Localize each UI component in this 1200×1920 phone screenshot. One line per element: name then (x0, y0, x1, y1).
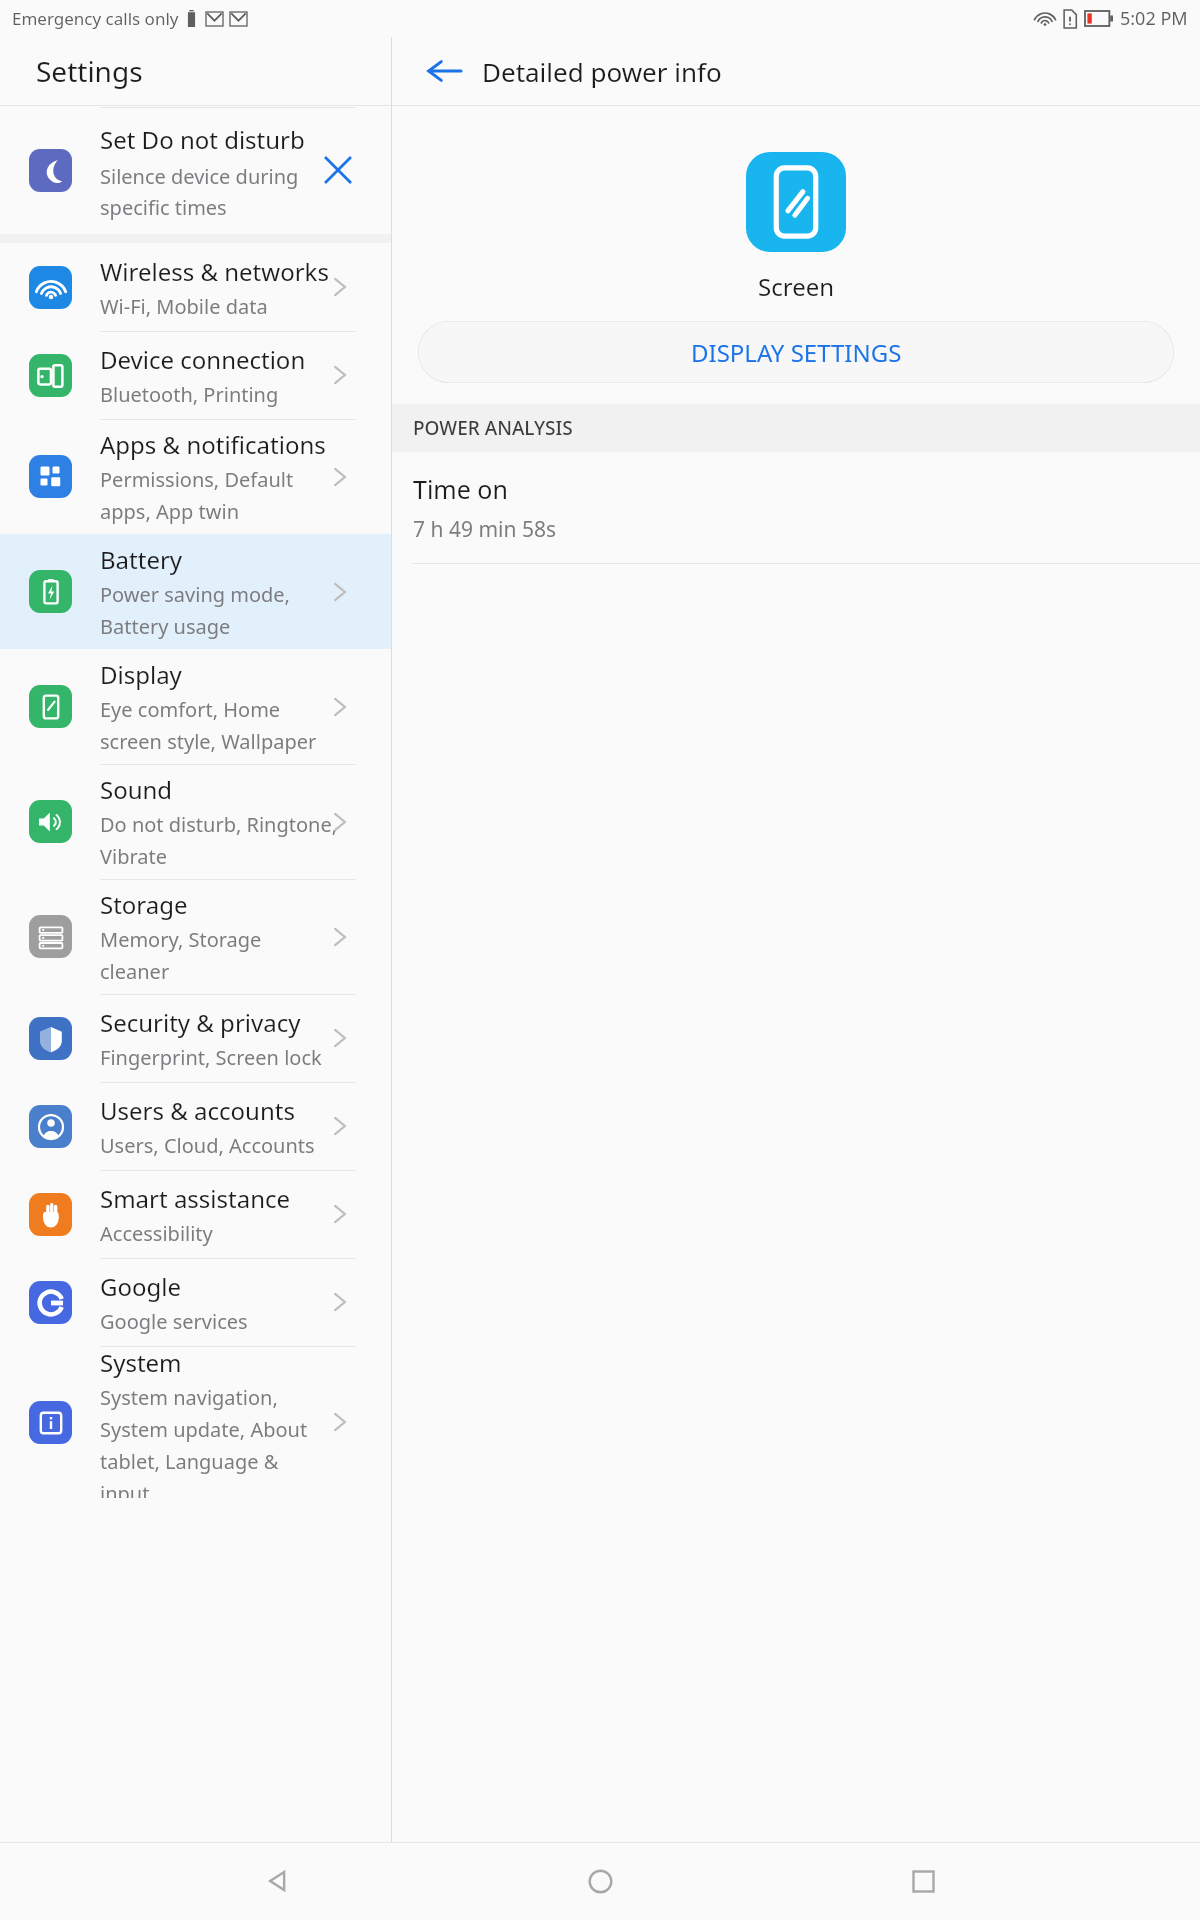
staticText: apps, App twin (100, 498, 239, 525)
staticText: Battery usage (100, 613, 231, 640)
staticText: DISPLAY SETTINGS (691, 336, 902, 369)
button[interactable]: Display (0, 649, 391, 764)
staticText: Apps & notifications (100, 428, 326, 461)
button[interactable]: System (0, 1346, 391, 1498)
staticText: Memory, Storage (100, 926, 262, 953)
staticText: System (100, 1346, 182, 1379)
staticText: Fingerprint, Screen lock (100, 1044, 322, 1071)
staticText: Bluetooth, Printing (100, 381, 279, 408)
staticText: Wireless & networks (100, 255, 329, 288)
button[interactable]: Back (418, 45, 470, 97)
staticText: Display (100, 658, 182, 691)
staticText: POWER ANALYSIS (413, 415, 573, 441)
button[interactable]: Set Do not disturb (0, 106, 391, 234)
button[interactable]: Battery (0, 534, 391, 649)
staticText: Users & accounts (100, 1094, 295, 1127)
staticText: System navigation, (100, 1384, 278, 1411)
staticText: Storage (100, 888, 188, 921)
staticText: cleaner (100, 958, 170, 985)
button[interactable]: Settings (0, 37, 391, 105)
staticText: Eye comfort, Home (100, 696, 281, 723)
staticText: Wi-Fi, Mobile data (100, 293, 268, 320)
button[interactable]: Smart assistance (0, 1170, 391, 1258)
button[interactable]: Device connection (0, 331, 391, 419)
staticText: Device connection (100, 343, 306, 376)
button[interactable]: Storage (0, 879, 391, 994)
staticText: Accessibility (100, 1220, 213, 1247)
button[interactable]: Wireless & networks (0, 243, 391, 331)
staticText: Vibrate (100, 843, 168, 870)
button[interactable]: Apps & notifications (0, 419, 391, 534)
staticText: Smart assistance (100, 1182, 291, 1215)
staticText: Permissions, Default (100, 466, 294, 493)
button[interactable]: Users & accounts (0, 1082, 391, 1170)
button[interactable]: Recents (878, 1842, 968, 1920)
staticText: screen style, Wallpaper (100, 728, 317, 755)
staticText: specific times (100, 194, 227, 221)
staticText: Detailed power info (482, 54, 722, 89)
button[interactable]: Sound (0, 764, 391, 879)
button[interactable]: Back (233, 1842, 323, 1920)
staticText: Sound (100, 773, 173, 806)
staticText: Power saving mode, (100, 581, 290, 608)
staticText: Silence device during (100, 163, 299, 190)
staticText: Google (100, 1270, 181, 1303)
staticText: Users, Cloud, Accounts (100, 1132, 315, 1159)
button[interactable]: DISPLAY SETTINGS (418, 321, 1174, 383)
button[interactable]: Google (0, 1258, 391, 1346)
button[interactable]: Security & privacy (0, 994, 391, 1082)
staticText: System update, About (100, 1416, 308, 1443)
button[interactable]: Home (555, 1842, 645, 1920)
staticText: Do not disturb, Ringtone, (100, 811, 338, 838)
staticText: tablet, Language & (100, 1448, 279, 1475)
staticText: Google services (100, 1308, 248, 1335)
staticText: Screen (758, 270, 835, 303)
button[interactable]: Dismiss (312, 144, 364, 196)
staticText: Battery (100, 543, 183, 576)
staticText: 7 h 49 min 58s (413, 515, 556, 544)
staticText: Time on (413, 472, 508, 506)
staticText: Set Do not disturb (100, 123, 305, 156)
staticText: Settings (36, 52, 143, 90)
staticText: Emergency calls only (12, 7, 179, 30)
staticText: input (100, 1480, 150, 1498)
staticText: Security & privacy (100, 1006, 301, 1039)
staticText: 5:02 PM (1120, 6, 1188, 31)
